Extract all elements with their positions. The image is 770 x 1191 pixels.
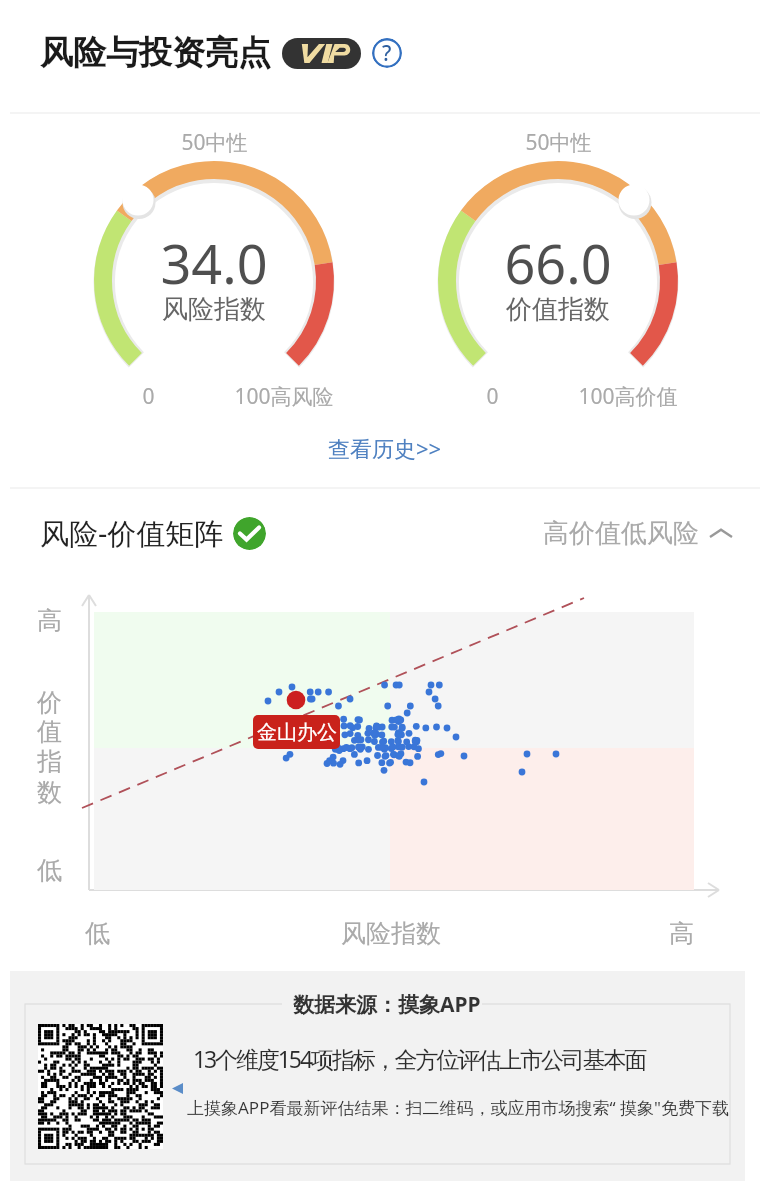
staticText: 风险指数 xyxy=(341,918,441,949)
button[interactable]: 价值指数 xyxy=(398,120,718,410)
staticText: 100高价值 xyxy=(578,382,678,411)
button[interactable]: 高价值低风险 xyxy=(543,517,733,550)
staticText: 上摸象APP看最新评估结果：扫二维码，或应用市场搜索“ 摸象"免费下载 xyxy=(187,1096,729,1119)
staticText: 50中性 xyxy=(181,128,248,157)
staticText: 数据来源：摸象APP xyxy=(293,990,481,1019)
staticText: 0 xyxy=(142,382,155,411)
button[interactable]: 风险指数 xyxy=(54,120,374,410)
button[interactable]: 金山办公 xyxy=(253,715,340,749)
staticText: 低 xyxy=(85,918,110,949)
staticText: 高 xyxy=(37,605,62,636)
staticText: ? xyxy=(382,39,392,68)
staticText: 0 xyxy=(486,382,499,411)
staticText: 风险与投资亮点 xyxy=(40,32,271,74)
staticText: 金山办公 xyxy=(257,720,337,745)
staticText: 34.0 xyxy=(160,226,268,300)
button[interactable]: 查看历史>> xyxy=(318,428,452,468)
staticText: 值 xyxy=(37,716,62,747)
staticText: 50中性 xyxy=(525,128,592,157)
staticText: 价 xyxy=(37,687,62,718)
staticText: 高 xyxy=(669,918,694,949)
staticText: 66.0 xyxy=(504,226,612,300)
button[interactable]: QR code: download MoXiang APP xyxy=(38,1024,163,1149)
staticText: 高价值低风险 xyxy=(543,517,699,550)
button[interactable]: Verified xyxy=(233,517,266,550)
staticText: 指 xyxy=(37,746,62,777)
staticText: 低 xyxy=(37,855,62,886)
staticText: 数 xyxy=(37,777,62,808)
button[interactable]: Help xyxy=(372,38,402,68)
staticText: 价值指数 xyxy=(506,293,610,326)
staticText: 查看历史>> xyxy=(328,433,442,463)
staticText: 风险-价值矩阵 xyxy=(40,513,224,553)
staticText: 风险指数 xyxy=(162,293,266,326)
staticText: 13个维度154项指标，全方位评估上市公司基本面 xyxy=(193,1043,646,1074)
staticText: 100高风险 xyxy=(234,382,334,411)
button[interactable] xyxy=(282,38,361,69)
